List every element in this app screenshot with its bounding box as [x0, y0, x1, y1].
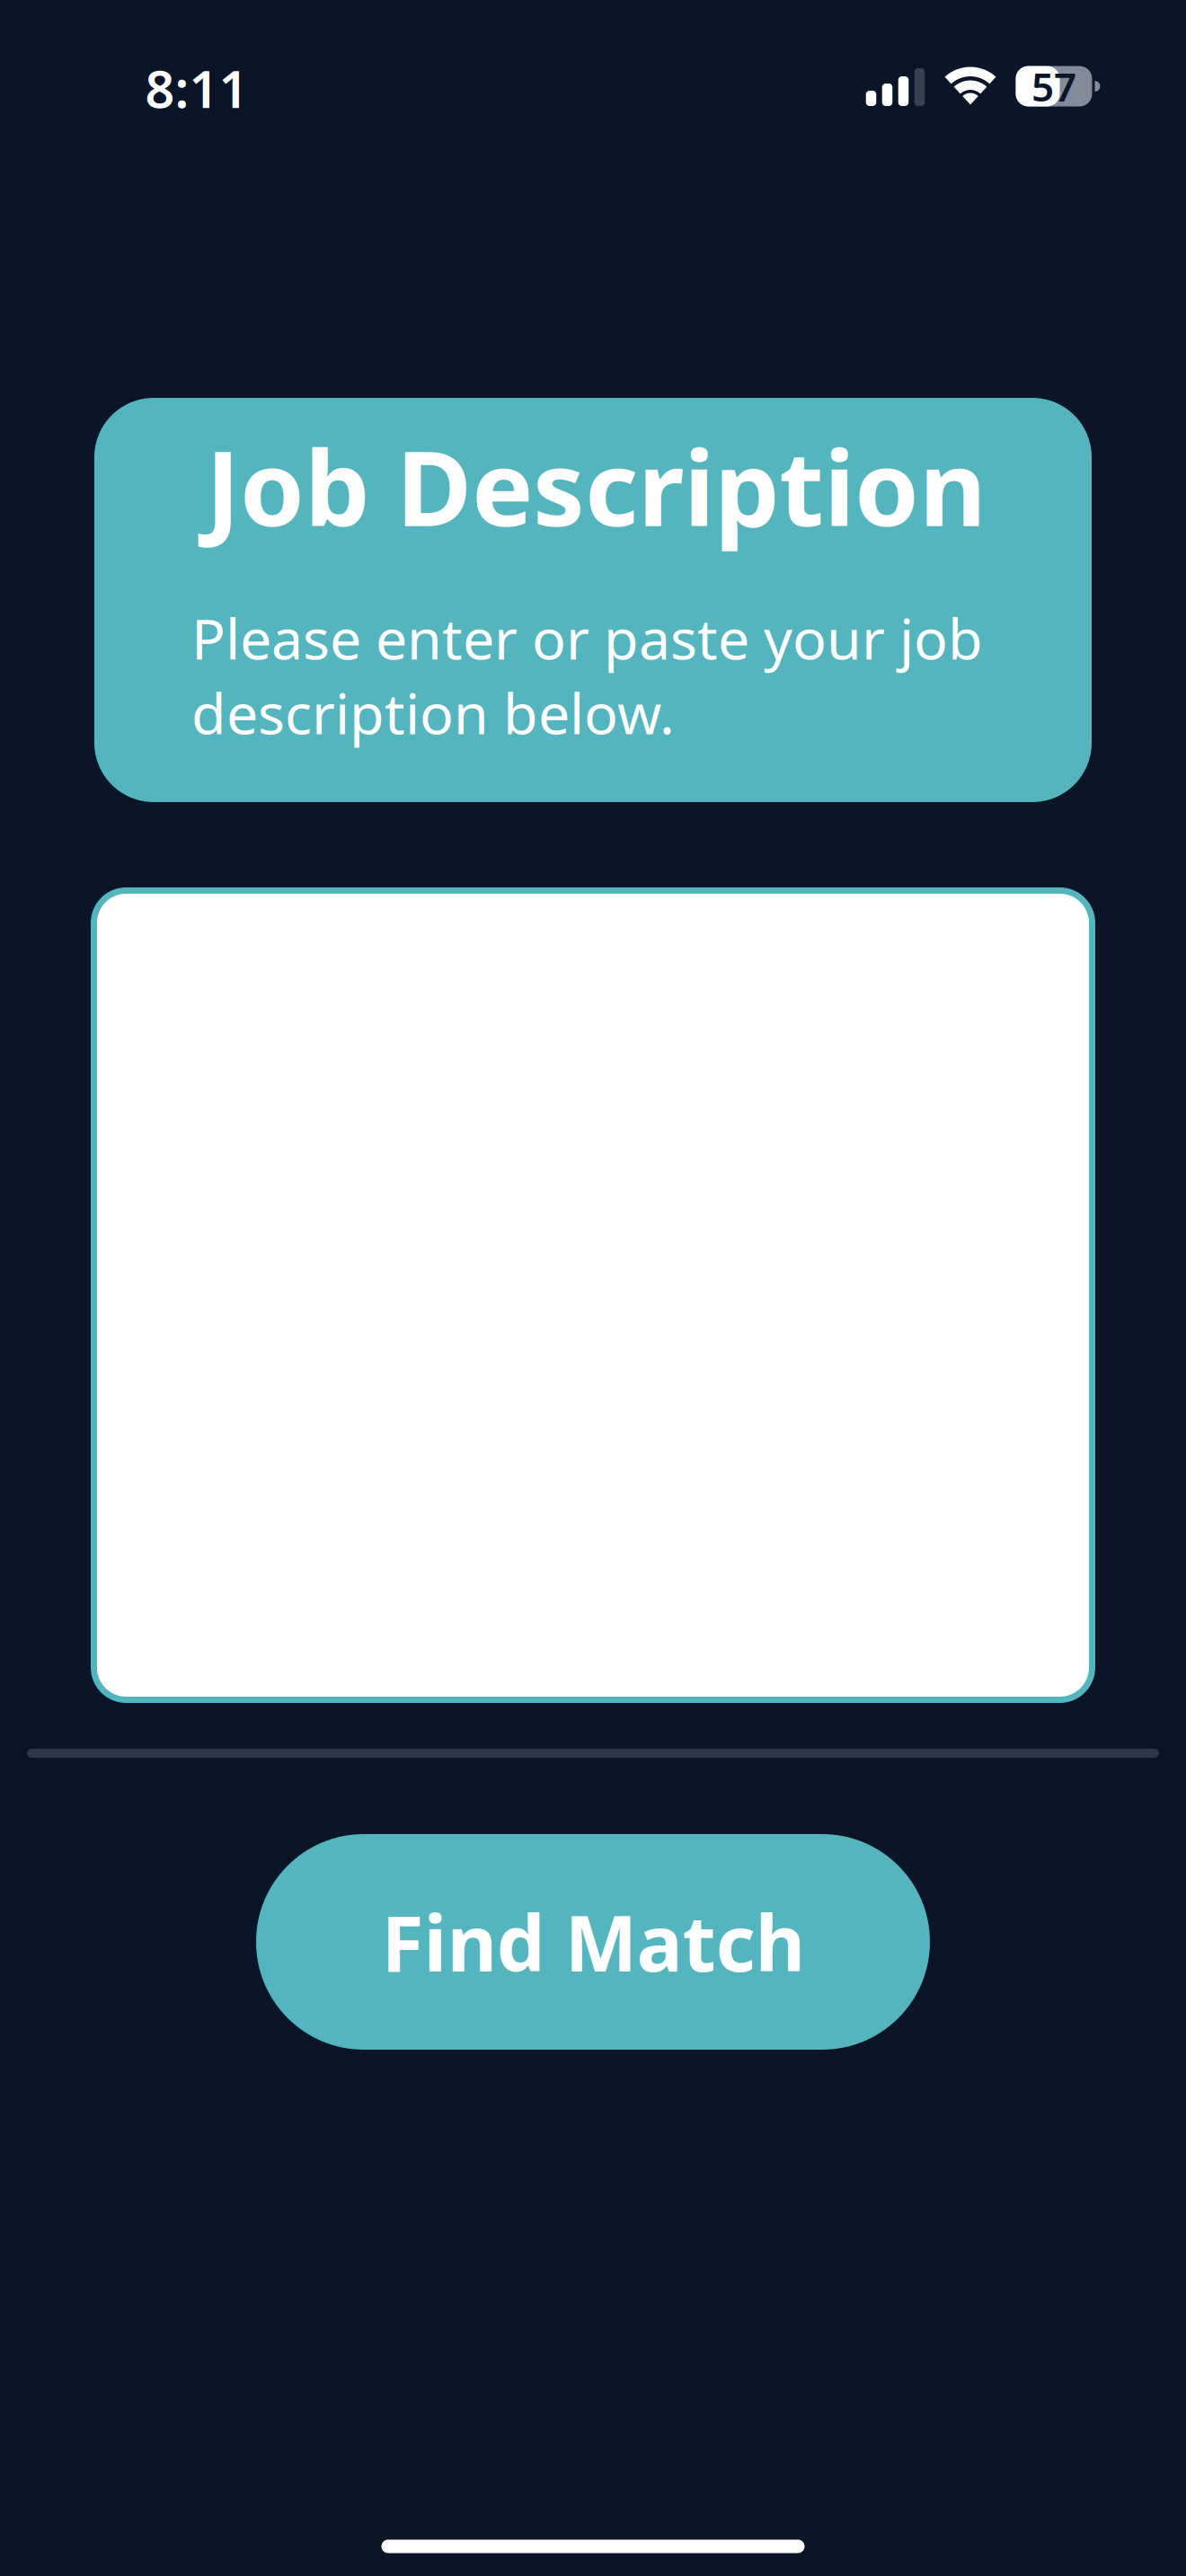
button[interactable]: Job description text field [94, 891, 1092, 1700]
staticText: Please enter or paste your job descripti… [191, 600, 983, 750]
staticText: Find Match [381, 1891, 805, 1993]
staticText: Job Description [206, 418, 987, 555]
staticText: 8:11 [145, 54, 248, 122]
button[interactable]: Find Match [256, 1834, 930, 2050]
staticText: 57 [1031, 60, 1076, 112]
